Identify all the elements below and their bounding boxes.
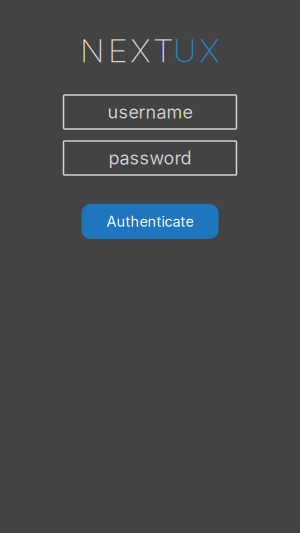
button[interactable]: username — [63, 95, 236, 129]
button[interactable]: Authenticate — [81, 204, 218, 239]
staticText: UX — [173, 31, 219, 70]
staticText: password — [108, 147, 191, 169]
staticText: Authenticate — [106, 213, 193, 230]
staticText: username — [107, 101, 192, 123]
button[interactable]: password — [63, 141, 236, 175]
staticText: NEXT — [80, 31, 173, 70]
